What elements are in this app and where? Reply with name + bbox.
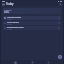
button[interactable]: Profile [46, 60, 51, 64]
button[interactable]: Focus session [3, 21, 61, 25]
staticText: Progress [4, 9, 12, 11]
staticText: Today [6, 2, 14, 6]
button[interactable]: Morning routine [3, 16, 61, 20]
button[interactable]: Menu [2, 3, 5, 6]
staticText: 6 tasks [7, 18, 12, 20]
staticText: Focus session [7, 21, 19, 23]
staticText: Morning routine [7, 16, 22, 18]
staticText: 4 tasks [7, 28, 12, 30]
button[interactable]: Activity [30, 60, 35, 64]
button[interactable]: Evening wind down [3, 26, 61, 30]
button[interactable]: Home [13, 60, 18, 64]
staticText: 25 min [7, 23, 12, 25]
button[interactable]: Search [59, 3, 62, 6]
button[interactable]: Progress [3, 8, 61, 14]
button[interactable]: Add [58, 55, 62, 59]
staticText: Evening wind down [7, 26, 24, 28]
staticText: 68% [4, 11, 10, 13]
